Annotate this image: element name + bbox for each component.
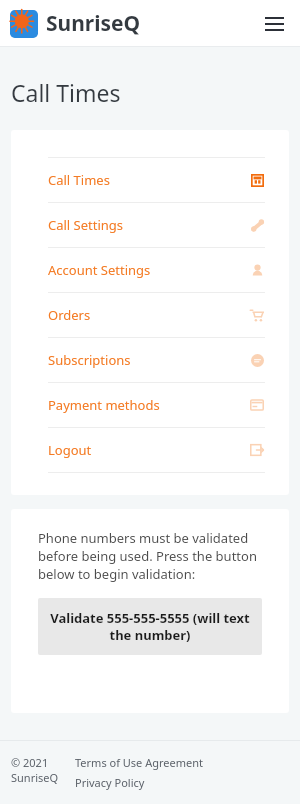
button[interactable]: Account Settings	[48, 248, 265, 292]
button[interactable]: Call Times	[48, 158, 265, 202]
button[interactable]: Privacy Policy	[75, 775, 145, 790]
staticText: SunriseQ	[46, 9, 141, 38]
staticText: Call Settings	[48, 216, 124, 234]
staticText: Logout	[48, 441, 92, 459]
staticText: Subscriptions	[48, 351, 131, 369]
button[interactable]: Terms of Use Agreement	[75, 755, 203, 770]
button[interactable]: Validate 555-555-5555 (will text the num…	[38, 598, 262, 655]
staticText: Validate 555-555-5555 (will text the num…	[46, 609, 254, 644]
button[interactable]: Orders	[48, 293, 265, 337]
staticText: Call Times	[48, 171, 110, 189]
button[interactable]: SunriseQ	[10, 9, 141, 38]
staticText: Orders	[48, 306, 91, 324]
button[interactable]: Subscriptions	[48, 338, 265, 382]
staticText: © 2021 SunriseQ	[11, 755, 59, 785]
staticText: Account Settings	[48, 261, 151, 279]
staticText: Payment methods	[48, 396, 160, 414]
staticText: Phone numbers must be validated before b…	[38, 529, 262, 583]
button[interactable]: Logout	[48, 428, 265, 472]
staticText: Call Times	[11, 77, 121, 108]
button[interactable]: Call Settings	[48, 203, 265, 247]
button[interactable]: Open navigation menu	[260, 10, 288, 38]
staticText: Terms of Use Agreement	[75, 755, 203, 770]
button[interactable]: Payment methods	[48, 383, 265, 427]
staticText: Privacy Policy	[75, 775, 145, 790]
